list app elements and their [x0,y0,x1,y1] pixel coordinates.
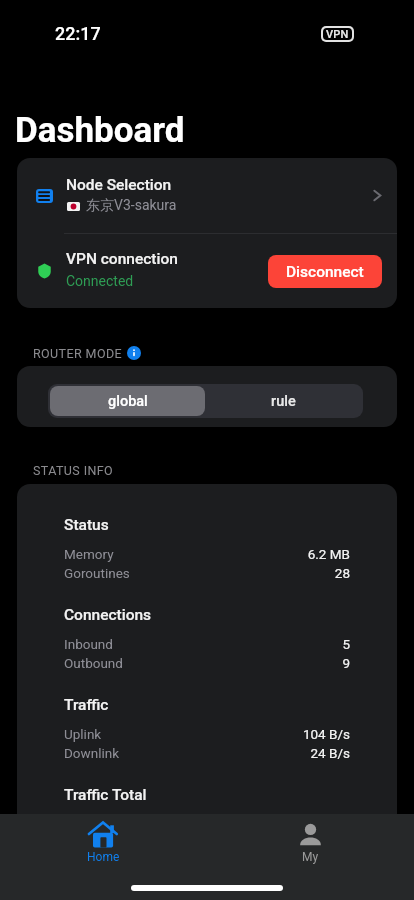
staticText: 9 [342,655,350,671]
staticText: 104 B/s [302,726,350,742]
staticText: 28 [334,565,350,581]
staticText: global [108,393,148,410]
button[interactable]: My [207,814,414,871]
staticText: Inbound [64,636,113,652]
staticText: My [302,850,319,864]
staticText: Connected [66,273,134,289]
staticText: Disconnect [286,263,364,281]
button[interactable]: Home [0,814,207,871]
staticText: VPN connection [66,250,178,268]
staticText: 东京V3-sakura [86,197,177,215]
staticText: 24 B/s [310,745,350,761]
staticText: Node Selection [66,176,172,194]
staticText: Home [87,850,120,864]
staticText: 5 [342,636,350,652]
staticText: rule [271,393,296,410]
button[interactable]: Disconnect [268,255,382,288]
staticText: Traffic Total [64,786,147,804]
staticText: Connections [64,606,152,624]
other: Router mode info [127,346,141,360]
staticText: Outbound [64,655,123,671]
other: Open node selection [373,188,382,203]
staticText: Status [64,516,109,534]
staticText: Goroutines [64,565,130,581]
staticText: ROUTER MODE [33,346,122,361]
button[interactable]: Node Selection [17,158,397,233]
staticText: VPN [326,28,349,40]
staticText: Dashboard [15,110,185,151]
staticText: Uplink [64,726,102,742]
staticText: Downlink [64,745,120,761]
staticText: Traffic [64,696,109,714]
button[interactable]: rule [205,386,361,416]
staticText: 22:17 [55,23,101,44]
staticText: STATUS INFO [33,463,114,478]
button[interactable]: global [50,386,205,416]
staticText: 6.2 MB [307,546,350,562]
staticText: Memory [64,546,114,562]
